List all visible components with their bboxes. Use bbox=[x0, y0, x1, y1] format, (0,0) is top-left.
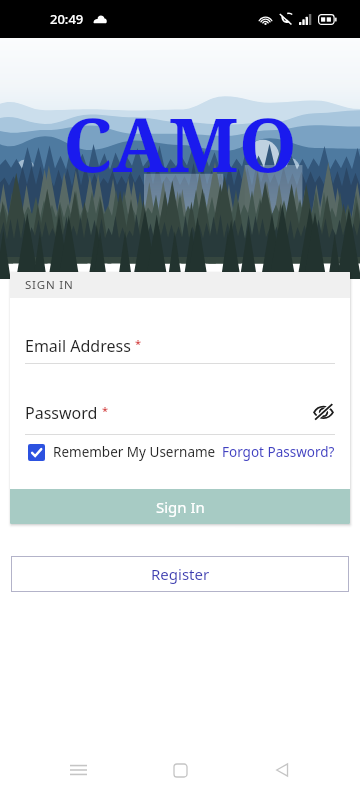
staticText: Sign In bbox=[156, 497, 205, 517]
button[interactable]: Password bbox=[25, 402, 109, 424]
button[interactable]: Email Address bbox=[25, 333, 335, 364]
button[interactable]: Register bbox=[11, 556, 349, 592]
button[interactable]: Home bbox=[160, 750, 200, 790]
staticText: * bbox=[135, 336, 142, 351]
staticText: Email Address bbox=[25, 335, 131, 357]
button[interactable]: Forgot Password? bbox=[222, 443, 335, 461]
button[interactable]: Recent apps bbox=[58, 750, 98, 790]
staticText: * bbox=[102, 403, 109, 418]
staticText: 20:49 bbox=[50, 10, 84, 28]
staticText: Forgot Password? bbox=[222, 443, 335, 461]
staticText: CAMO bbox=[63, 93, 297, 194]
staticText: Remember My Username bbox=[53, 443, 216, 461]
staticText: SIGN IN bbox=[25, 277, 74, 293]
staticText: Password bbox=[25, 402, 98, 424]
staticText: Register bbox=[151, 564, 210, 584]
button[interactable]: Back bbox=[262, 750, 302, 790]
button[interactable]: Sign In bbox=[10, 489, 350, 524]
button[interactable]: Remember My Username bbox=[28, 443, 216, 461]
button[interactable]: Show password bbox=[311, 400, 335, 424]
